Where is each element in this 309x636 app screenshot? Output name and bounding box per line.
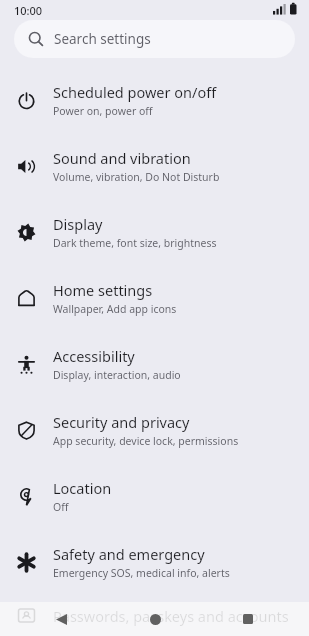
- button[interactable]: Search settings: [14, 20, 295, 58]
- staticText: Off: [53, 500, 69, 514]
- staticText: Location: [53, 478, 112, 498]
- staticText: Passwords, passkeys and accounts: [53, 606, 289, 626]
- staticText: Sound and vibration: [53, 148, 191, 168]
- staticText: Emergency SOS, medical info, alerts: [53, 566, 230, 580]
- staticText: Accessibility: [53, 346, 135, 366]
- staticText: Power on, power off: [53, 104, 153, 118]
- staticText: Display: [53, 214, 103, 234]
- button[interactable]: Accessibility: [0, 331, 309, 397]
- staticText: Scheduled power on/off: [53, 82, 217, 102]
- button[interactable]: Location: [0, 463, 309, 529]
- staticText: Security and privacy: [53, 412, 190, 432]
- button[interactable]: Home settings: [0, 265, 309, 331]
- staticText: Dark theme, font size, brightness: [53, 236, 217, 250]
- button[interactable]: Security and privacy: [0, 397, 309, 463]
- staticText: Home settings: [53, 280, 153, 300]
- button[interactable]: Scheduled power on/off: [0, 67, 309, 133]
- button[interactable]: Passwords, passkeys and accounts: [0, 595, 309, 636]
- button[interactable]: Safety and emergency: [0, 529, 309, 595]
- staticText: Search settings: [54, 30, 151, 48]
- staticText: Volume, vibration, Do Not Disturb: [53, 170, 220, 184]
- staticText: 10:00: [14, 3, 43, 18]
- staticText: Wallpaper, Add app icons: [53, 302, 177, 316]
- button[interactable]: Home: [142, 606, 168, 632]
- button[interactable]: Display: [0, 199, 309, 265]
- staticText: Display, interaction, audio: [53, 368, 181, 382]
- button[interactable]: Back: [48, 606, 74, 632]
- staticText: App security, device lock, permissions: [53, 434, 239, 448]
- button[interactable]: Recent apps: [235, 606, 261, 632]
- button[interactable]: Sound and vibration: [0, 133, 309, 199]
- staticText: Safety and emergency: [53, 544, 205, 564]
